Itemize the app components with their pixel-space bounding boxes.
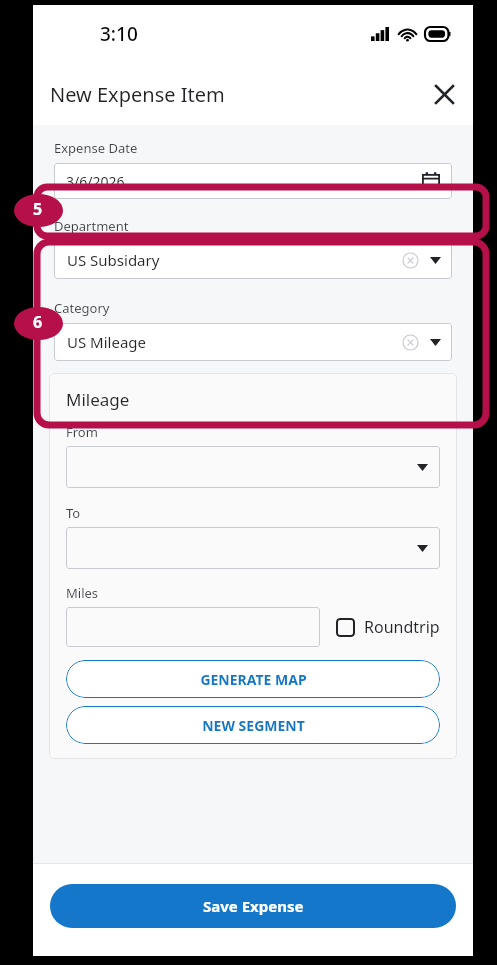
staticText: Miles (66, 584, 99, 602)
button[interactable]: US Mileage (54, 323, 452, 361)
staticText: 3/6/2026 (66, 172, 125, 191)
staticText: Roundtrip (364, 616, 440, 638)
staticText: Mileage (66, 388, 130, 411)
staticText: US Subsidary (67, 250, 160, 270)
staticText: Save Expense (203, 896, 304, 916)
staticText: New Expense Item (50, 81, 225, 108)
button[interactable] (66, 446, 440, 488)
staticText: 3:10 (100, 21, 138, 47)
staticText: NEW SEGMENT (202, 716, 305, 735)
button[interactable] (66, 527, 440, 569)
button[interactable] (66, 607, 320, 647)
button[interactable]: US Subsidary (54, 241, 452, 279)
button[interactable]: NEW SEGMENT (66, 706, 440, 744)
staticText: US Mileage (67, 332, 147, 352)
button[interactable]: Roundtrip (336, 616, 440, 638)
staticText: Department (54, 217, 129, 235)
staticText: 6 (33, 311, 43, 333)
button[interactable]: GENERATE MAP (66, 660, 440, 698)
staticText: Category (54, 299, 110, 317)
staticText: Expense Date (54, 139, 138, 157)
button[interactable]: Close (423, 73, 465, 115)
other: Pick date (422, 172, 440, 190)
staticText: GENERATE MAP (200, 670, 307, 689)
staticText: From (66, 423, 98, 441)
button[interactable]: 3/6/2026 (54, 163, 452, 199)
staticText: 5 (33, 198, 43, 220)
button[interactable]: Save Expense (50, 884, 456, 928)
staticText: To (66, 504, 81, 522)
